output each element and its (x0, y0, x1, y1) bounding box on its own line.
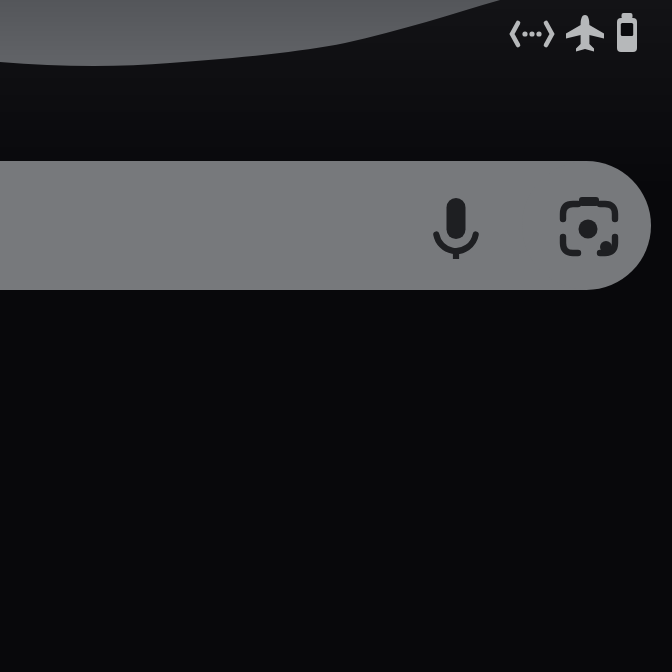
button[interactable]: Search (0, 0, 672, 672)
